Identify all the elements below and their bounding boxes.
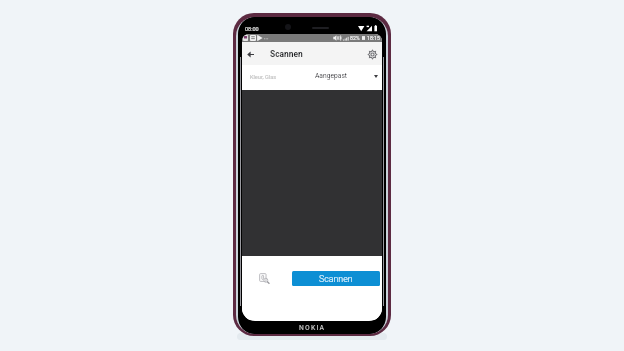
staticText: Kleur, Glas (250, 74, 277, 81)
button[interactable]: Scannen (292, 271, 380, 286)
staticText: 82% (350, 35, 360, 41)
button[interactable]: Settings (364, 46, 380, 62)
staticText: NOKIA (299, 324, 326, 332)
button[interactable]: Scan history (258, 272, 270, 284)
staticText: Aangepast (315, 72, 348, 80)
staticText: 08:00 (245, 26, 259, 32)
button[interactable]: Back (242, 46, 258, 62)
staticText: Scannen (270, 49, 303, 59)
staticText: Scannen (319, 274, 353, 284)
button[interactable]: Kleur, Glas (242, 65, 382, 90)
staticText: 18:15 (367, 35, 380, 41)
